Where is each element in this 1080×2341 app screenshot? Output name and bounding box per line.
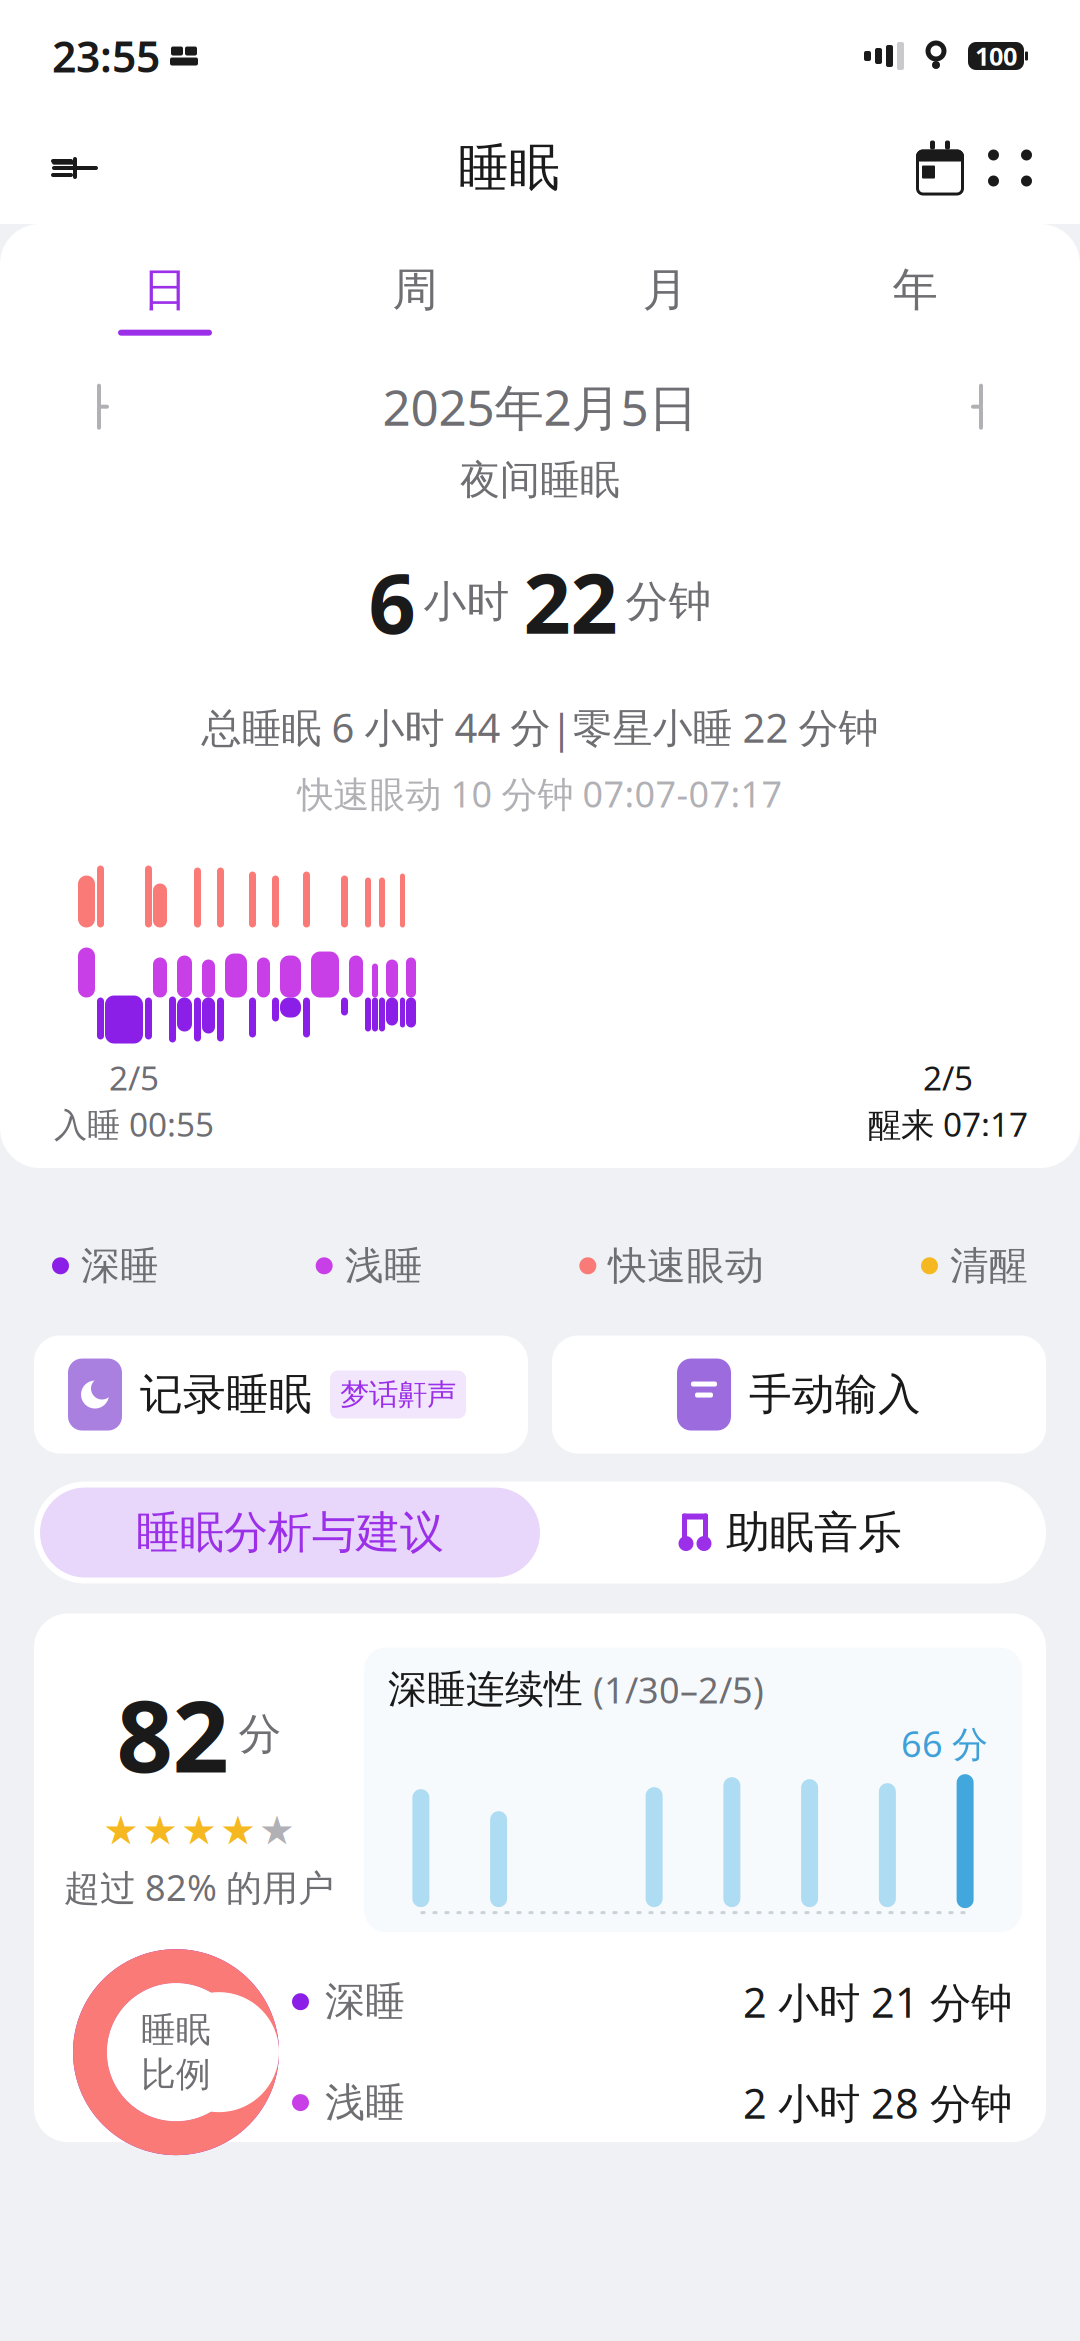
staticText: 小时 [423,575,509,628]
staticText: 月 [642,262,687,318]
staticText: ★ [142,1808,178,1853]
staticText: 浅睡 [325,2078,405,2127]
staticText: 快速眼动 [608,1242,764,1289]
staticText: 比例 [141,2053,211,2096]
staticText: ★ [220,1808,256,1853]
staticText: 2 小时 21 分钟 [743,1974,1012,2029]
staticText: 82 [116,1669,228,1800]
staticText: 6 [368,547,415,657]
staticText: 总睡眠 6 小时 44 分|零星小睡 22 分钟 [201,701,878,754]
staticText: 深睡连续性 [388,1666,583,1713]
staticText: 深睡 [325,1977,405,2026]
staticText: 2025年2月5日 [382,374,697,439]
staticText: 超过 82% 的用户 [64,1863,334,1911]
button[interactable]: 前一天 [64,372,134,442]
button[interactable]: 记录睡眠 [34,1335,528,1453]
staticText: 夜间睡眠 [460,456,620,505]
staticText: 清醒 [950,1242,1028,1289]
staticText: 2 小时 28 分钟 [743,2075,1012,2130]
staticText: ★ [181,1808,217,1853]
button[interactable]: 日历 [904,129,976,207]
staticText: 浅睡 [345,1242,423,1289]
button[interactable]: 年 [790,252,1040,346]
staticText: 助眠音乐 [726,1505,902,1559]
staticText: 睡眠 [458,137,560,199]
button[interactable]: 日 [40,252,290,346]
staticText: 睡眠 [141,2009,211,2051]
staticText: 分 [238,1708,281,1760]
staticText: 23:55 [52,28,160,84]
button[interactable]: 更多 [976,129,1044,207]
staticText: 年 [892,262,937,318]
button[interactable]: 月 [540,252,790,346]
staticText: 入睡 00:55 [54,1102,214,1146]
staticText: 快速眼动 10 分钟 07:07-07:17 [297,770,782,817]
button[interactable]: 周 [290,252,540,346]
staticText: 日 [142,262,187,318]
staticText: 100 [975,39,1017,73]
staticText: 66 分 [901,1719,988,1767]
staticText: 记录睡眠 [140,1368,312,1421]
staticText: ★ [103,1808,139,1853]
staticText: 周 [392,262,437,318]
button[interactable]: 手动输入 [552,1335,1046,1453]
staticText: 手动输入 [749,1368,921,1421]
staticText: 睡眠分析与建议 [136,1505,444,1559]
staticText: 深睡 [81,1242,159,1289]
staticText: (1/30–2/5) [593,1665,764,1713]
button[interactable]: 后一天 [946,372,1016,442]
button[interactable]: 助眠音乐 [540,1487,1040,1577]
staticText: 2/5 [923,1055,973,1100]
staticText: 22 [523,547,617,657]
staticText: 分钟 [625,575,711,628]
staticText: 梦话鼾声 [340,1376,456,1412]
button[interactable]: 返回 [36,129,114,207]
staticText: ★ [259,1808,295,1853]
staticText: 2/5 [109,1055,159,1100]
staticText: 醒来 07:17 [868,1102,1028,1146]
button[interactable]: 睡眠分析与建议 [40,1487,540,1577]
